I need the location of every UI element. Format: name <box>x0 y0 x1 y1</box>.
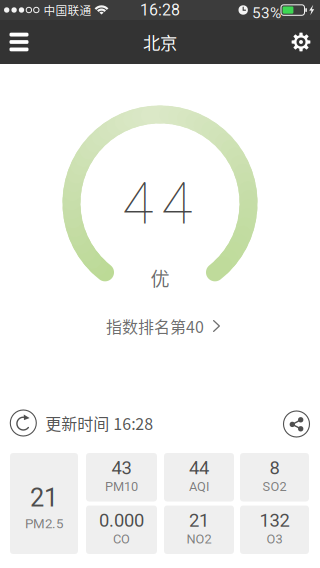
button[interactable]: 指数排名第40 <box>3 311 320 341</box>
staticText: PM2.5 <box>25 516 63 531</box>
staticText: SO2 <box>262 479 286 494</box>
button[interactable]: Share <box>283 411 309 437</box>
staticText: 优 <box>150 264 169 292</box>
staticText: 更新时间 16:28 <box>45 411 153 435</box>
staticText: 16:28 <box>140 1 180 19</box>
button[interactable]: 21 <box>164 505 234 554</box>
button[interactable]: 132 <box>240 505 309 554</box>
staticText: O3 <box>266 532 282 547</box>
staticText: 北京 <box>143 29 177 55</box>
staticText: 44 <box>122 170 192 238</box>
staticText: 中国联通 <box>44 1 92 18</box>
button[interactable]: Settings <box>279 20 320 64</box>
staticText: 21 <box>30 483 58 513</box>
button[interactable]: 44 <box>164 453 234 501</box>
staticText: 21 <box>189 510 209 531</box>
staticText: 指数排名第40 <box>106 314 204 338</box>
button[interactable]: 43 <box>86 453 157 501</box>
staticText: 53% <box>252 4 281 22</box>
button[interactable]: 0.000 <box>86 505 157 554</box>
button[interactable]: 8 <box>240 453 309 501</box>
staticText: 0.000 <box>99 510 144 531</box>
staticText: 132 <box>259 510 289 531</box>
staticText: 8 <box>269 457 279 479</box>
staticText: NO2 <box>186 532 211 547</box>
staticText: CO <box>113 532 130 547</box>
staticText: AQI <box>189 479 209 494</box>
button[interactable]: 更新时间 16:28 <box>10 410 153 436</box>
button[interactable]: Menu <box>0 20 41 64</box>
staticText: 44 <box>189 457 209 479</box>
button[interactable]: 21 <box>10 453 78 554</box>
staticText: 43 <box>111 457 131 479</box>
staticText: PM10 <box>105 479 138 494</box>
